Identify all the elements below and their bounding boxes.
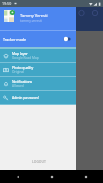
staticText: Tammy Veresti — [20, 13, 48, 18]
staticText: Google Road Map — [12, 56, 39, 60]
staticText: Photo quality — [12, 65, 34, 70]
staticText: Map layer — [12, 51, 28, 56]
button[interactable]: Back — [0, 170, 35, 183]
button[interactable]: Notifications — [0, 77, 76, 91]
staticText: Notifications — [12, 79, 33, 84]
staticText: Tracker mode — [3, 37, 27, 42]
button[interactable]: LOGOUT — [25, 156, 53, 167]
button[interactable]: Admin password — [0, 91, 76, 105]
button[interactable]: Photo quality — [0, 63, 76, 77]
staticText: Admin password — [12, 95, 39, 100]
staticText: tammy.veresti — [20, 18, 42, 22]
staticText: Original — [12, 70, 24, 74]
staticText: LOGOUT — [32, 159, 46, 164]
button[interactable]: Tracker mode — [0, 31, 76, 47]
staticText: Allowed — [12, 84, 24, 88]
button[interactable]: Recent apps — [69, 170, 103, 183]
button[interactable]: Map layer — [0, 49, 76, 63]
staticText: 19:50 — [2, 1, 12, 6]
button[interactable]: Home — [35, 170, 69, 183]
